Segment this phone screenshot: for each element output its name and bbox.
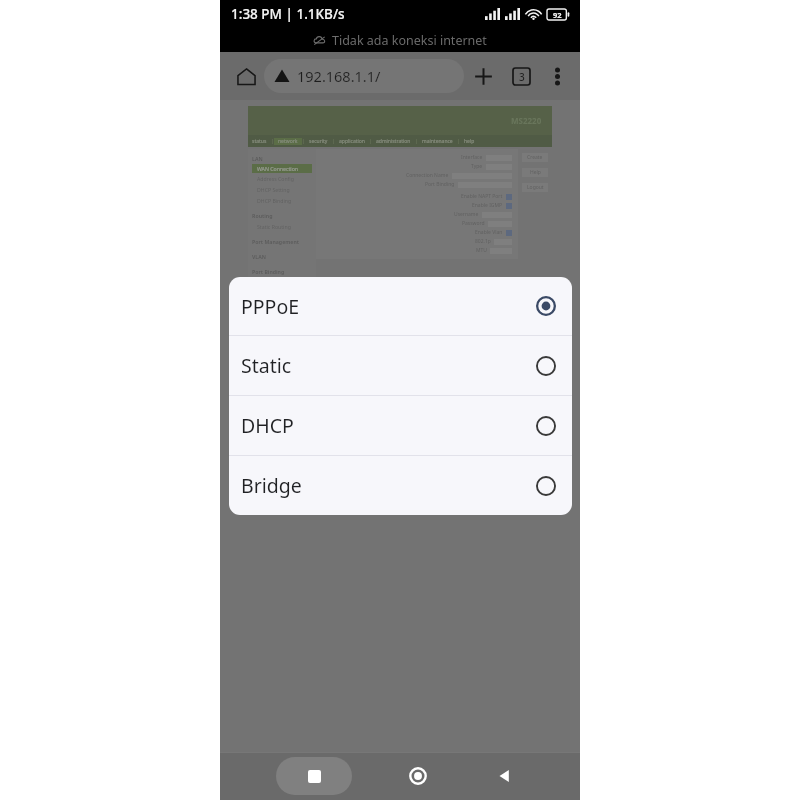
staticText: Create: [527, 154, 543, 161]
button[interactable]: Recent apps: [276, 757, 352, 795]
staticText: Port Management: [252, 238, 300, 245]
staticText: LAN: [252, 155, 263, 162]
staticText: Routing: [252, 212, 273, 219]
staticText: Port Binding: [425, 181, 455, 188]
staticText: WAN Connection: [257, 165, 299, 172]
staticText: Logout: [527, 184, 544, 191]
staticText: 1:38 PM | 1.1KB/s: [231, 5, 345, 23]
staticText: 92: [553, 10, 562, 20]
button[interactable]: DHCP: [229, 396, 572, 455]
staticText: Static Routing: [257, 223, 291, 230]
staticText: help: [464, 138, 475, 145]
button[interactable]: Bridge: [229, 456, 572, 515]
staticText: Bridge: [241, 472, 302, 499]
staticText: 192.168.1.1/start.ghtml: [297, 66, 456, 86]
button[interactable]: Home: [398, 756, 438, 796]
staticText: Type: [471, 163, 483, 170]
button[interactable]: 192.168.1.1/start.ghtml: [264, 59, 464, 93]
staticText: MS2220: [511, 115, 542, 126]
staticText: Interface: [461, 154, 483, 161]
staticText: |: [302, 138, 305, 145]
staticText: |: [415, 138, 418, 145]
button[interactable]: PPPoE: [229, 277, 572, 335]
button[interactable]: New tab: [464, 57, 502, 95]
button[interactable]: More options: [540, 59, 574, 93]
staticText: |: [369, 138, 372, 145]
staticText: 802.1p: [475, 238, 491, 245]
staticText: Static: [241, 352, 292, 379]
staticText: 3: [519, 70, 525, 84]
staticText: status: [252, 138, 267, 145]
staticText: |: [332, 138, 335, 145]
staticText: |: [271, 138, 274, 145]
staticText: Enable IGMP: [472, 202, 503, 209]
staticText: Password: [462, 220, 485, 227]
staticText: Connection Name: [406, 172, 449, 179]
staticText: Username: [454, 211, 479, 218]
staticText: network: [278, 138, 298, 145]
staticText: Enable Vlan: [475, 229, 503, 236]
staticText: application: [339, 138, 365, 145]
staticText: security: [309, 138, 328, 145]
button[interactable]: Back: [484, 756, 524, 796]
staticText: Tidak ada koneksi internet: [332, 32, 487, 49]
staticText: Port Binding: [252, 268, 285, 275]
staticText: Enable NAPT Port: [461, 193, 503, 200]
staticText: administration: [376, 138, 411, 145]
button[interactable]: Static: [229, 336, 572, 395]
staticText: DHCP Binding: [257, 197, 292, 204]
staticText: MTU: [476, 247, 487, 254]
staticText: Help: [530, 169, 541, 176]
button[interactable]: Tabs: 3: [502, 57, 540, 95]
staticText: PPPoE: [241, 293, 300, 320]
button[interactable]: Home: [228, 58, 264, 94]
staticText: DHCP Setting: [257, 186, 290, 193]
staticText: maintenance: [422, 138, 453, 145]
staticText: VLAN: [252, 253, 267, 260]
staticText: |: [457, 138, 460, 145]
staticText: DHCP: [241, 412, 294, 439]
staticText: Address Config: [257, 175, 294, 182]
